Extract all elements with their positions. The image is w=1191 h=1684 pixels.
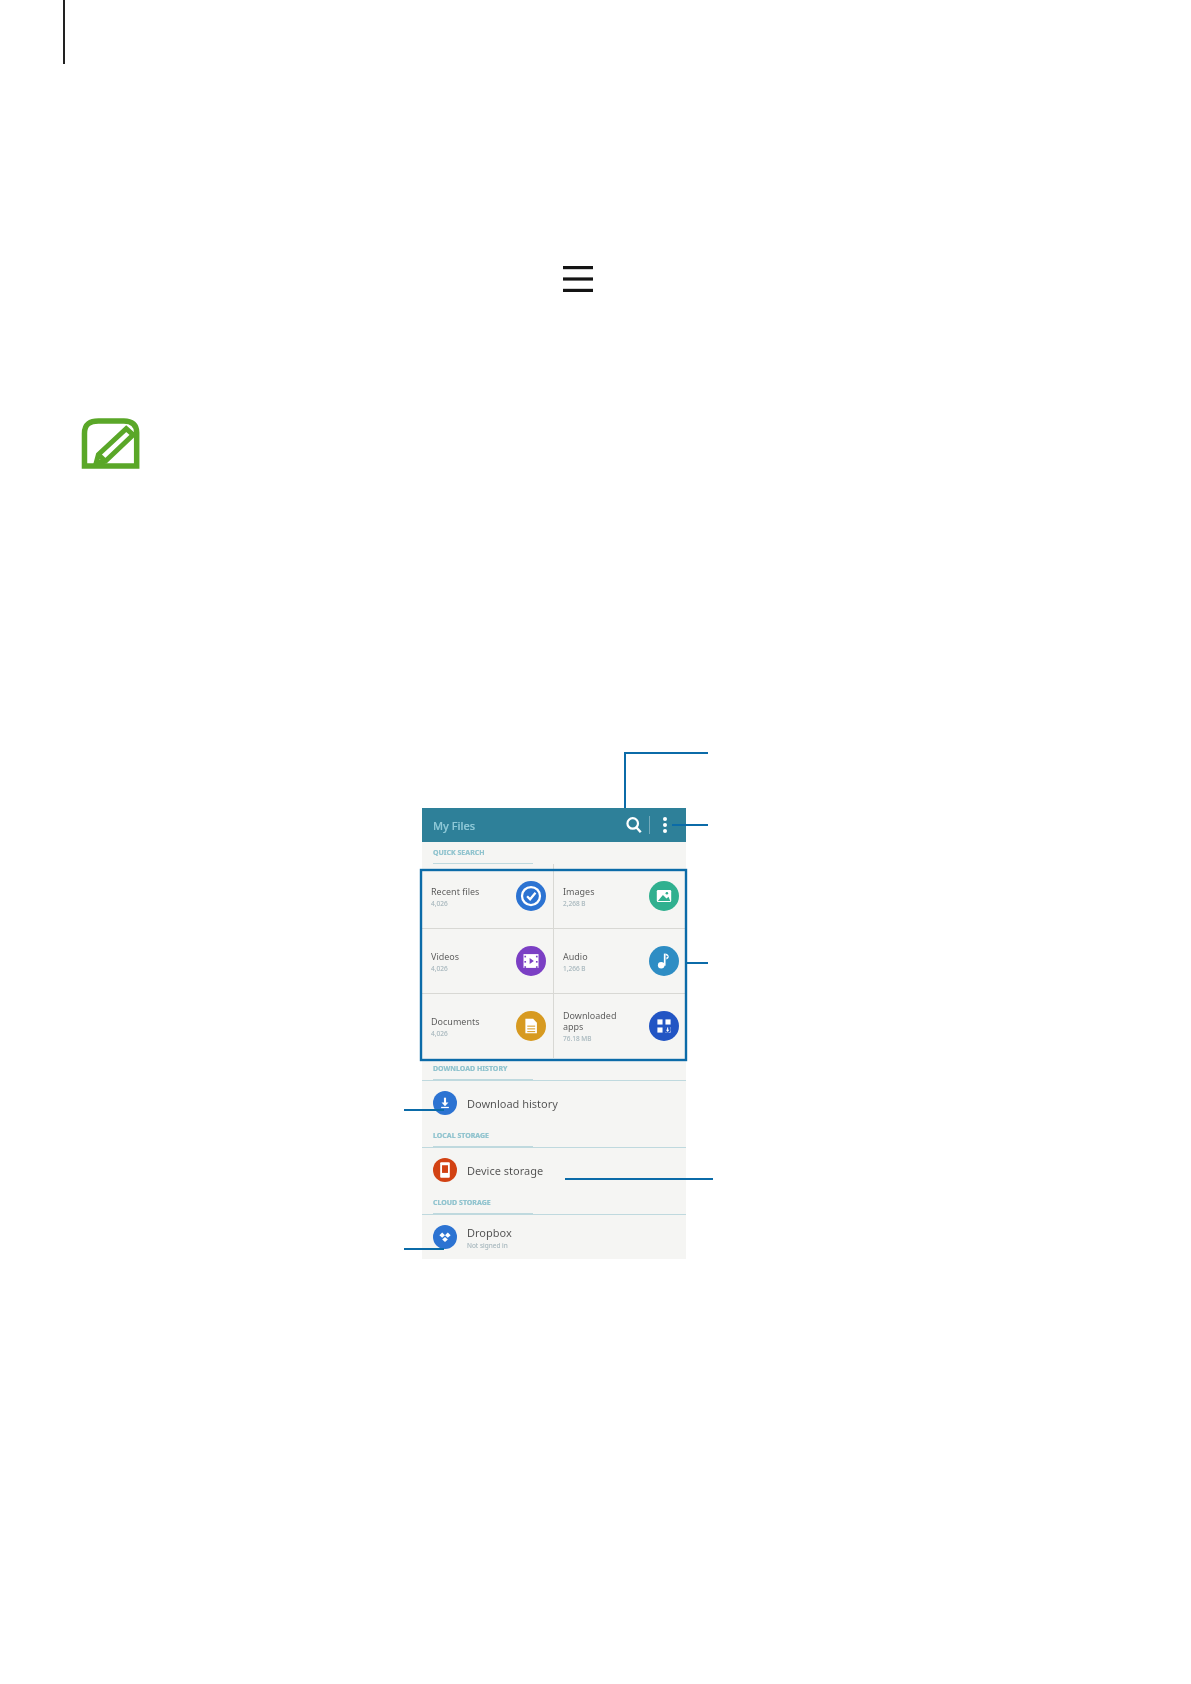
- button[interactable]: Device storage: [422, 1148, 686, 1192]
- button[interactable]: Documents: [422, 994, 553, 1058]
- staticText: 4,026: [431, 1029, 448, 1038]
- staticText: 76.18 MB: [563, 1034, 592, 1043]
- staticText: Not signed in: [467, 1241, 508, 1250]
- staticText: QUICK SEARCH: [433, 848, 485, 858]
- staticText: Documents: [431, 1015, 480, 1027]
- staticText: Images: [563, 885, 595, 897]
- button[interactable]: Images: [554, 864, 686, 928]
- button[interactable]: Recent files: [422, 864, 553, 928]
- button[interactable]: Dropbox: [422, 1215, 686, 1259]
- staticText: CLOUD STORAGE: [433, 1198, 491, 1208]
- button[interactable]: Search: [619, 810, 649, 840]
- staticText: 2,268 B: [563, 899, 586, 908]
- staticText: Recent files: [431, 885, 480, 897]
- staticText: Device storage: [467, 1163, 544, 1178]
- button[interactable]: Videos: [422, 929, 553, 993]
- staticText: Videos: [431, 950, 460, 962]
- staticText: Download history: [467, 1096, 558, 1111]
- staticText: Audio: [563, 950, 588, 962]
- staticText: DOWNLOAD HISTORY: [433, 1064, 508, 1074]
- button[interactable]: More options: [650, 810, 680, 840]
- button[interactable]: Audio: [554, 929, 686, 993]
- staticText: LOCAL STORAGE: [433, 1131, 489, 1141]
- staticText: Dropbox: [467, 1225, 512, 1240]
- staticText: 4,026: [431, 964, 448, 973]
- staticText: Downloaded apps: [563, 1009, 617, 1032]
- button[interactable]: Downloaded apps: [554, 994, 686, 1058]
- button[interactable]: Download history: [422, 1081, 686, 1125]
- staticText: 1,266 B: [563, 964, 586, 973]
- staticText: 4,026: [431, 899, 448, 908]
- staticText: My Files: [433, 818, 476, 833]
- button[interactable]: Menu: [563, 266, 593, 292]
